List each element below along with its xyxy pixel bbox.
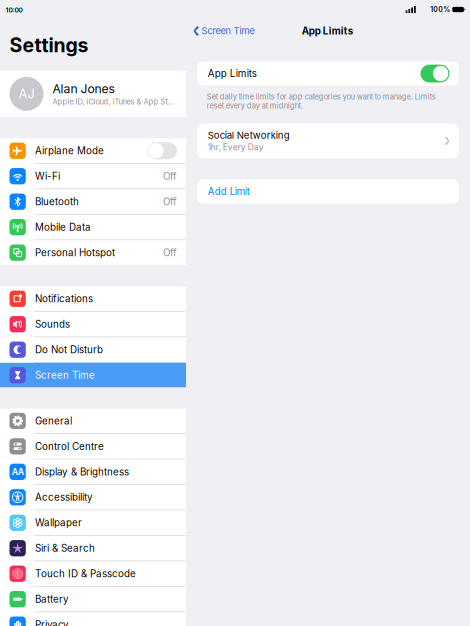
button[interactable]: Screen Time bbox=[0, 363, 186, 387]
staticText: Alan Jones bbox=[52, 81, 114, 96]
button[interactable]: Airplane Mode bbox=[0, 138, 186, 163]
button[interactable]: Notifications bbox=[0, 286, 186, 311]
button[interactable]: Wallpaper bbox=[0, 510, 186, 535]
staticText: Sounds bbox=[35, 318, 70, 330]
staticText: AA bbox=[12, 467, 24, 477]
staticText: Settings bbox=[9, 33, 88, 57]
staticText: Mobile Data bbox=[35, 221, 91, 233]
staticText: Apple ID, iCloud, iTunes & App St… bbox=[52, 97, 173, 106]
button[interactable]: AJ bbox=[0, 70, 186, 117]
button[interactable]: Social Networking bbox=[197, 124, 459, 158]
button[interactable]: Control Centre bbox=[0, 434, 186, 459]
staticText: General bbox=[35, 415, 72, 427]
button[interactable]: Battery bbox=[0, 587, 186, 611]
staticText: Airplane Mode bbox=[35, 145, 104, 157]
button[interactable]: Wi-Fi bbox=[0, 164, 186, 189]
staticText: Display & Brightness bbox=[35, 466, 129, 478]
staticText: Wallpaper bbox=[35, 517, 82, 529]
staticText: Off bbox=[163, 170, 177, 182]
staticText: Battery bbox=[35, 593, 69, 605]
staticText: 10:00 bbox=[5, 6, 22, 14]
button[interactable]: Mobile Data bbox=[0, 215, 186, 239]
staticText: Personal Hotspot bbox=[35, 247, 115, 259]
button[interactable]: Siri & Search bbox=[0, 536, 186, 561]
button[interactable]: Personal Hotspot bbox=[0, 240, 186, 265]
staticText: Off bbox=[163, 196, 177, 208]
button[interactable]: Touch ID & Passcode bbox=[0, 561, 186, 586]
staticText: App Limits bbox=[208, 68, 257, 79]
staticText: 100% bbox=[430, 5, 450, 14]
staticText: Screen Time bbox=[201, 25, 254, 36]
button[interactable]: General bbox=[0, 408, 186, 433]
staticText: App Limits bbox=[302, 25, 353, 37]
staticText: Privacy bbox=[35, 619, 69, 626]
staticText: Off bbox=[163, 247, 177, 259]
staticText: 1hr, Every Day bbox=[208, 142, 264, 152]
staticText: Bluetooth bbox=[35, 196, 79, 208]
staticText: Screen Time bbox=[35, 369, 95, 381]
button[interactable]: Privacy bbox=[0, 612, 186, 626]
button[interactable]: Bluetooth bbox=[0, 189, 186, 214]
staticText: Accessibility bbox=[35, 491, 93, 503]
staticText: Set daily time limits for app categories… bbox=[207, 92, 436, 110]
button[interactable]: Accessibility bbox=[0, 485, 186, 510]
staticText: Control Centre bbox=[35, 440, 104, 452]
button[interactable]: AA bbox=[0, 459, 186, 484]
staticText: Social Networking bbox=[208, 129, 290, 141]
staticText: Notifications bbox=[35, 293, 93, 305]
staticText: Wi-Fi bbox=[35, 170, 60, 182]
button[interactable]: Add Limit bbox=[197, 179, 459, 204]
staticText: AJ bbox=[18, 86, 34, 101]
staticText: Add Limit bbox=[208, 186, 250, 197]
button[interactable]: App Limits bbox=[420, 65, 449, 82]
staticText: Do Not Disturb bbox=[35, 344, 103, 356]
button[interactable]: Screen Time bbox=[186, 20, 254, 42]
staticText: Siri & Search bbox=[35, 542, 95, 554]
staticText: Touch ID & Passcode bbox=[35, 568, 136, 580]
button[interactable]: Sounds bbox=[0, 312, 186, 337]
button[interactable]: Do Not Disturb bbox=[0, 337, 186, 362]
